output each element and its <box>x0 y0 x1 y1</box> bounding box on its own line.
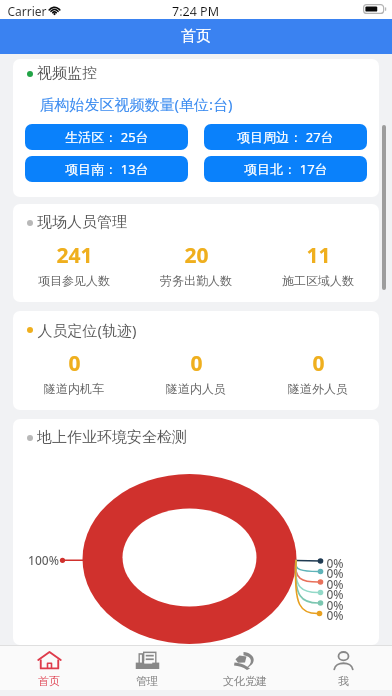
button[interactable]: 项目周边： 27台 <box>204 124 367 150</box>
staticText: 0% <box>326 607 344 623</box>
staticText: 项目参见人数 <box>38 273 110 288</box>
button[interactable]: 0 <box>257 349 379 396</box>
staticText: 项目南： 13台 <box>65 160 149 178</box>
staticText: 盾构始发区视频数量(单位:台) <box>39 94 233 114</box>
staticText: 我 <box>338 674 349 688</box>
staticText: 0% <box>326 565 344 581</box>
staticText: 地上作业环境安全检测 <box>37 428 187 447</box>
staticText: 0 <box>190 349 203 378</box>
staticText: 文化党建 <box>223 674 267 688</box>
staticText: Carrier <box>7 3 47 19</box>
button[interactable]: 20 <box>135 241 257 288</box>
staticText: 0% <box>326 586 344 602</box>
button[interactable]: Manage <box>98 646 196 690</box>
button[interactable]: 项目北： 17台 <box>204 156 367 182</box>
staticText: 11 <box>306 241 331 270</box>
button[interactable]: 241 <box>13 241 135 288</box>
button[interactable]: 0 <box>13 349 135 396</box>
button[interactable]: 项目南： 13台 <box>25 156 188 182</box>
staticText: 100% <box>28 552 59 568</box>
staticText: 0 <box>68 349 81 378</box>
staticText: 241 <box>56 241 93 270</box>
staticText: 人员定位(轨迹) <box>37 320 137 340</box>
staticText: 0% <box>326 576 344 592</box>
staticText: 隧道外人员 <box>288 381 348 396</box>
staticText: 生活区： 25台 <box>65 128 149 146</box>
staticText: 0% <box>326 555 344 571</box>
button[interactable]: Party <box>196 646 294 690</box>
staticText: 施工区域人数 <box>282 273 354 288</box>
button[interactable]: Home <box>0 646 98 690</box>
staticText: 7:24 PM <box>172 3 219 20</box>
button[interactable]: 11 <box>257 241 379 288</box>
staticText: 0 <box>312 349 325 378</box>
staticText: 项目北： 17台 <box>244 160 328 178</box>
button[interactable]: 0 <box>135 349 257 396</box>
staticText: 0% <box>326 597 344 613</box>
staticText: 隧道内人员 <box>166 381 226 396</box>
staticText: 隧道内机车 <box>44 381 104 396</box>
staticText: 首页 <box>38 674 60 688</box>
staticText: 现场人员管理 <box>37 213 127 232</box>
staticText: 20 <box>184 241 209 270</box>
staticText: 管理 <box>136 674 158 688</box>
staticText: 劳务出勤人数 <box>160 273 232 288</box>
button[interactable]: 生活区： 25台 <box>25 124 188 150</box>
staticText: 视频监控 <box>37 64 97 83</box>
staticText: 首页 <box>181 27 211 46</box>
button[interactable]: Me <box>294 646 392 690</box>
staticText: 项目周边： 27台 <box>237 128 334 146</box>
